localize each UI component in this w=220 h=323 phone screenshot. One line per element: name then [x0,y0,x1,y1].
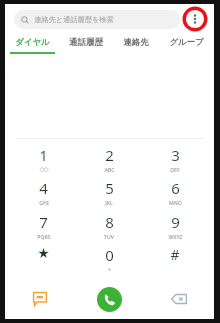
button[interactable]: 7 [11,212,76,240]
staticText: 2 [105,145,114,165]
button[interactable]: 3 [142,145,208,173]
button[interactable]: 5 [76,178,142,206]
staticText: 5 [105,178,114,198]
button[interactable]: その他のオプション [180,4,210,34]
staticText: 9 [171,212,180,232]
button[interactable]: 1 [11,145,76,172]
staticText: 7 [39,212,48,232]
button[interactable]: ダイヤル [5,34,60,54]
staticText: ★ [37,245,50,261]
button[interactable]: 連絡先 [112,34,159,52]
button[interactable]: 6 [142,178,208,206]
staticText: 4 [39,178,48,198]
button[interactable]: # [142,245,208,264]
staticText: JKL [105,199,113,206]
staticText: 3 [171,145,180,165]
button[interactable]: 4 [11,178,76,206]
staticText: WXYZ [168,233,183,240]
button[interactable]: 削除 [144,279,214,319]
staticText: ABC [104,166,115,173]
button[interactable]: SMS を送信 [5,279,74,319]
staticText: PQRS [37,233,51,240]
staticText: 通話履歴 [69,37,103,48]
staticText: MNO [169,199,182,206]
staticText: 1 [39,145,48,165]
button[interactable]: ★ [11,245,76,261]
staticText: + [108,266,111,273]
staticText: # [170,245,180,264]
button[interactable]: 0 [76,245,142,273]
staticText: 0 [105,245,114,265]
button[interactable]: 発信 [74,279,144,319]
staticText: ○○ [39,166,49,172]
staticText: 8 [105,212,114,232]
button[interactable]: 8 [76,212,142,240]
staticText: 連絡先 [123,37,149,48]
button[interactable]: 9 [142,212,208,240]
button[interactable]: グループ [159,34,214,52]
staticText: GHI [39,199,49,206]
staticText: DEF [170,166,180,173]
staticText: TUV [104,233,114,240]
staticText: ダイヤル [15,37,50,48]
staticText: 6 [171,178,180,198]
button[interactable]: 連絡先と通話履歴を検索 [14,10,180,29]
staticText: グループ [169,37,204,48]
staticText: 連絡先と通話履歴を検索 [34,15,114,24]
button[interactable]: 通話履歴 [60,34,112,52]
button[interactable]: 2 [76,145,142,173]
